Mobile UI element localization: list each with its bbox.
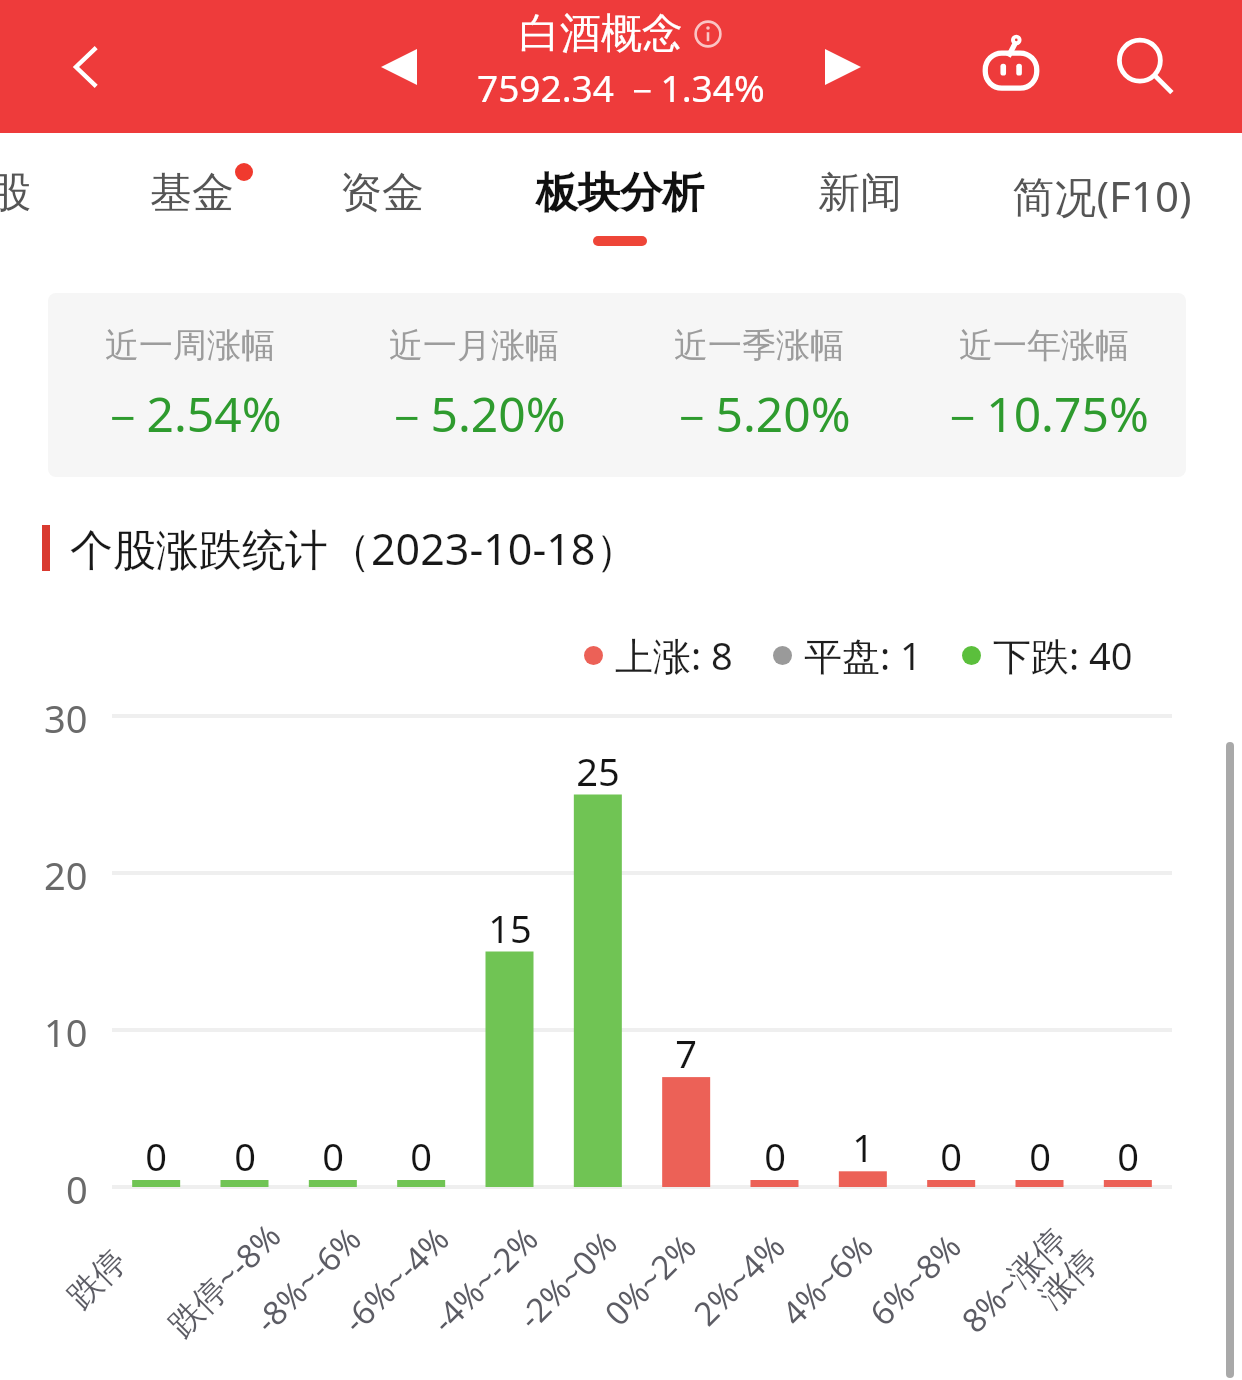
staticText: 股: [0, 167, 31, 220]
staticText: -4%~-2%: [422, 1217, 547, 1342]
staticText: 板块分析: [536, 167, 704, 220]
button[interactable]: 近一季涨幅: [616, 324, 901, 447]
button[interactable]: 板块分析: [505, 133, 735, 273]
staticText: 0: [940, 1130, 962, 1176]
staticText: 近一季涨幅: [674, 324, 844, 367]
button[interactable]: Back: [52, 32, 122, 102]
staticText: -6%~-4%: [333, 1217, 458, 1342]
staticText: 4%~6%: [771, 1224, 882, 1335]
staticText: 10: [44, 1006, 88, 1054]
staticText: －2.54%: [98, 381, 282, 447]
button[interactable]: Next sector: [806, 30, 880, 104]
staticText: 下跌: 40: [993, 629, 1133, 681]
button[interactable]: 近一年涨幅: [901, 324, 1186, 447]
staticText: －10.75%: [938, 381, 1149, 447]
staticText: -2%~0%: [508, 1220, 627, 1339]
staticText: 0: [145, 1130, 167, 1176]
staticText: 0: [322, 1130, 344, 1176]
button[interactable]: 股: [0, 133, 60, 273]
staticText: -8%~-6%: [245, 1217, 370, 1342]
staticText: 上涨: 8: [615, 629, 733, 681]
button[interactable]: 基金: [117, 133, 267, 273]
staticText: 7: [675, 1027, 697, 1073]
staticText: 15: [488, 902, 532, 948]
staticText: 6%~8%: [859, 1224, 970, 1335]
staticText: 近一月涨幅: [389, 324, 559, 367]
button[interactable]: Previous sector: [362, 30, 436, 104]
button[interactable]: 资金: [307, 133, 457, 273]
staticText: 20: [44, 849, 88, 897]
staticText: 25: [576, 745, 620, 791]
staticText: －5.20%: [382, 381, 566, 447]
button[interactable]: Search: [1096, 18, 1194, 116]
staticText: 0: [234, 1130, 256, 1176]
staticText: 0: [1029, 1130, 1051, 1176]
staticText: 白酒概念: [519, 8, 683, 60]
staticText: 资金: [340, 167, 424, 220]
staticText: 30: [44, 692, 88, 740]
staticText: 近一周涨幅: [105, 324, 275, 367]
button[interactable]: 下跌: 40: [962, 629, 1133, 681]
button[interactable]: 简况(F10): [972, 133, 1232, 273]
staticText: 0: [1117, 1130, 1139, 1176]
button[interactable]: 近一周涨幅: [48, 324, 332, 447]
button[interactable]: 近一月涨幅: [332, 324, 616, 447]
staticText: 2%~4%: [683, 1224, 794, 1335]
staticText: 0: [66, 1163, 88, 1211]
button[interactable]: 新闻: [785, 133, 935, 273]
staticText: 简况(F10): [1012, 167, 1192, 224]
button[interactable]: 平盘: 1: [773, 629, 922, 681]
staticText: 新闻: [818, 167, 902, 220]
staticText: 涨停: [1031, 1241, 1107, 1317]
staticText: 跌停: [59, 1241, 135, 1317]
staticText: 个股涨跌统计（2023-10-18）: [70, 519, 639, 578]
staticText: 7592.34 －1.34%: [477, 62, 765, 113]
staticText: 平盘: 1: [804, 629, 922, 681]
button[interactable]: Info: [692, 18, 724, 50]
staticText: 0: [410, 1130, 432, 1176]
staticText: 8%~涨停: [951, 1217, 1077, 1342]
staticText: 0%~2%: [594, 1224, 705, 1335]
button[interactable]: AI assistant: [962, 18, 1060, 116]
staticText: 近一年涨幅: [959, 324, 1129, 367]
button[interactable]: 上涨: 8: [584, 629, 733, 681]
staticText: 基金: [150, 167, 234, 220]
staticText: 跌停~-8%: [158, 1213, 290, 1346]
staticText: 1: [852, 1121, 874, 1167]
staticText: 0: [764, 1130, 786, 1176]
staticText: －5.20%: [667, 381, 851, 447]
